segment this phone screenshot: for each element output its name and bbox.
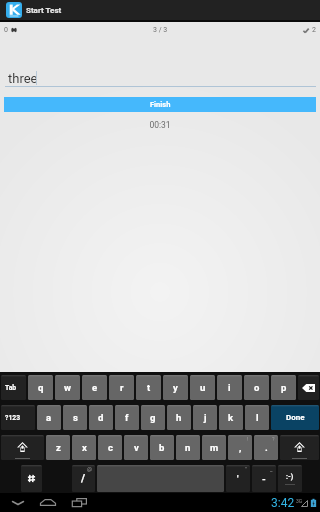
button[interactable]: c bbox=[98, 435, 122, 460]
button[interactable]: Keyboard settings bbox=[21, 465, 42, 492]
button[interactable]: r bbox=[109, 375, 134, 400]
staticText: . bbox=[265, 442, 268, 453]
staticText: 3G bbox=[296, 498, 303, 504]
button[interactable]: t bbox=[136, 375, 161, 400]
button[interactable]: o bbox=[244, 375, 269, 400]
staticText: j bbox=[204, 412, 207, 423]
button[interactable]: Done bbox=[271, 405, 319, 430]
button[interactable]: Home bbox=[33, 493, 62, 512]
button[interactable]: 0 bbox=[4, 26, 17, 34]
button[interactable]: Recent apps bbox=[65, 493, 94, 512]
button[interactable]: j bbox=[193, 405, 217, 430]
staticText: - bbox=[262, 473, 266, 484]
staticText: a bbox=[46, 412, 52, 423]
staticText: :-) bbox=[286, 473, 294, 481]
staticText: r bbox=[120, 382, 124, 393]
staticText: q bbox=[38, 382, 44, 393]
staticText: w bbox=[64, 382, 71, 393]
button[interactable]: / bbox=[72, 465, 95, 492]
staticText: u bbox=[200, 382, 206, 393]
staticText: g bbox=[150, 412, 156, 423]
staticText: p bbox=[281, 382, 287, 393]
button[interactable]: q bbox=[28, 375, 53, 400]
button[interactable]: Space bbox=[97, 465, 224, 492]
button[interactable]: l bbox=[245, 405, 269, 430]
staticText: _ bbox=[270, 466, 273, 472]
staticText: v bbox=[134, 442, 139, 453]
staticText: i bbox=[228, 382, 231, 393]
staticText: " bbox=[245, 466, 247, 472]
staticText: Tab bbox=[5, 384, 17, 392]
button[interactable]: n bbox=[176, 435, 200, 460]
button[interactable]: h bbox=[167, 405, 191, 430]
staticText: y bbox=[173, 382, 178, 393]
staticText: Start Test bbox=[26, 6, 62, 15]
staticText: s bbox=[73, 412, 78, 423]
button[interactable]: - bbox=[252, 465, 276, 492]
button[interactable]: Finish bbox=[4, 97, 316, 112]
button[interactable]: Back bbox=[3, 493, 32, 512]
staticText: ' bbox=[237, 473, 239, 484]
staticText: 0 bbox=[4, 26, 8, 34]
button[interactable]: i bbox=[217, 375, 242, 400]
staticText: f bbox=[125, 412, 129, 423]
button[interactable]: Shift bbox=[280, 435, 319, 460]
staticText: / bbox=[81, 472, 86, 485]
button[interactable]: p bbox=[271, 375, 296, 400]
staticText: @ bbox=[87, 466, 92, 472]
staticText: 00:31 bbox=[0, 120, 320, 130]
button[interactable]: u bbox=[190, 375, 215, 400]
button[interactable]: ' bbox=[226, 465, 250, 492]
staticText: l bbox=[256, 412, 259, 423]
staticText: ? bbox=[272, 436, 275, 442]
button[interactable]: f bbox=[115, 405, 139, 430]
staticText: k bbox=[228, 412, 234, 423]
staticText: , bbox=[239, 442, 242, 453]
staticText: o bbox=[254, 382, 260, 393]
staticText: 2 bbox=[312, 26, 316, 34]
staticText: b bbox=[159, 442, 165, 453]
button[interactable]: s bbox=[63, 405, 87, 430]
button[interactable]: v bbox=[124, 435, 148, 460]
staticText: 3:42 bbox=[271, 496, 295, 510]
staticText: c bbox=[108, 442, 113, 453]
staticText: x bbox=[82, 442, 87, 453]
button[interactable]: m bbox=[202, 435, 226, 460]
button[interactable]: 2 bbox=[303, 26, 316, 34]
button[interactable]: w bbox=[55, 375, 80, 400]
button[interactable]: Shift bbox=[1, 435, 44, 460]
button[interactable]: Backspace bbox=[298, 375, 319, 400]
button[interactable]: Tab bbox=[1, 375, 26, 400]
button[interactable]: Kaplan logo bbox=[6, 2, 22, 18]
staticText: Finish bbox=[150, 100, 171, 109]
staticText: n bbox=[185, 442, 191, 453]
button[interactable]: a bbox=[37, 405, 61, 430]
staticText: h bbox=[176, 412, 182, 423]
staticText: t bbox=[147, 382, 151, 393]
button[interactable]: :-) bbox=[278, 465, 302, 492]
staticText: Done bbox=[286, 413, 305, 422]
button[interactable]: x bbox=[72, 435, 96, 460]
button[interactable]: ?123 bbox=[1, 405, 35, 430]
button[interactable]: z bbox=[46, 435, 70, 460]
staticText: d bbox=[98, 412, 104, 423]
button[interactable]: k bbox=[219, 405, 243, 430]
button[interactable]: e bbox=[82, 375, 107, 400]
staticText: ?123 bbox=[5, 414, 21, 422]
button[interactable]: y bbox=[163, 375, 188, 400]
button[interactable]: g bbox=[141, 405, 165, 430]
button[interactable]: b bbox=[150, 435, 174, 460]
staticText: 3 / 3 bbox=[153, 26, 168, 34]
staticText: z bbox=[56, 442, 61, 453]
staticText: m bbox=[210, 442, 219, 453]
button[interactable]: d bbox=[89, 405, 113, 430]
staticText: ! bbox=[247, 436, 249, 442]
button[interactable]: , bbox=[228, 435, 252, 460]
staticText: e bbox=[92, 382, 98, 393]
staticText: three bbox=[8, 71, 38, 86]
button[interactable]: . bbox=[254, 435, 278, 460]
